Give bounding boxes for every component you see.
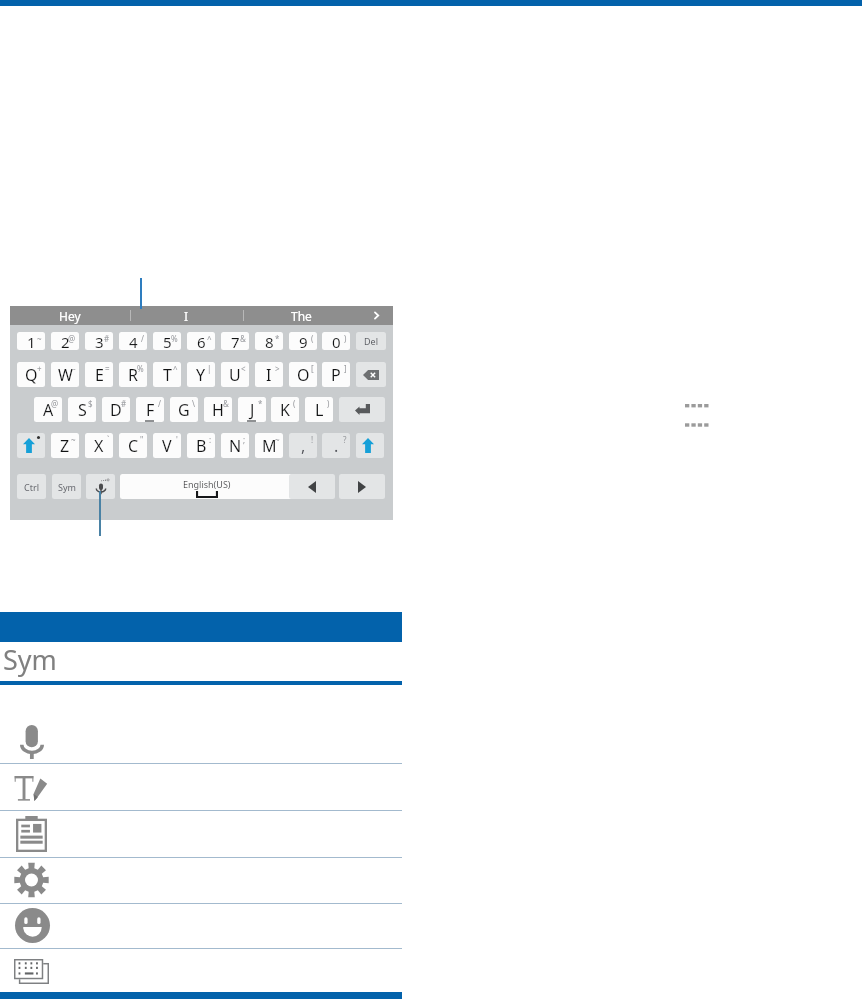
staticText: R xyxy=(128,364,138,386)
staticText: ! xyxy=(311,434,314,445)
button[interactable]: Q xyxy=(17,362,45,387)
staticText: - xyxy=(73,363,76,374)
button[interactable]: , xyxy=(289,433,317,458)
button[interactable]: Shift xyxy=(356,433,384,458)
staticText: % xyxy=(137,363,144,374)
staticText: @ xyxy=(51,398,59,409)
button[interactable]: I xyxy=(255,362,283,387)
button[interactable]: M xyxy=(255,433,283,458)
button[interactable]: R xyxy=(119,362,147,387)
staticText: J xyxy=(250,399,255,421)
staticText: ) xyxy=(344,333,347,344)
button[interactable]: E xyxy=(85,362,113,387)
staticText: V xyxy=(162,435,172,457)
button[interactable]: B xyxy=(187,433,215,458)
button[interactable]: The xyxy=(243,306,360,325)
button[interactable]: Y xyxy=(187,362,215,387)
staticText: & xyxy=(223,398,229,409)
button[interactable]: English(US) xyxy=(120,474,293,499)
button[interactable]: Shift xyxy=(17,433,45,458)
staticText: ` xyxy=(107,434,110,445)
staticText: Hey xyxy=(59,308,81,324)
button[interactable]: 1 xyxy=(17,332,45,350)
staticText: 7 xyxy=(231,332,240,350)
button[interactable]: T xyxy=(153,362,181,387)
button[interactable]: W xyxy=(51,362,79,387)
button[interactable]: A xyxy=(34,397,62,422)
staticText: [ xyxy=(311,363,314,374)
staticText: 9 xyxy=(299,332,308,350)
staticText: " xyxy=(140,434,144,445)
staticText: The xyxy=(291,308,312,324)
staticText: . xyxy=(334,435,339,457)
button[interactable]: H xyxy=(204,397,232,422)
staticText: ? xyxy=(343,434,347,445)
button[interactable]: N xyxy=(221,433,249,458)
button[interactable]: V xyxy=(153,433,181,458)
button[interactable]: I xyxy=(130,306,243,325)
button[interactable]: 3 xyxy=(85,332,113,350)
button[interactable]: F xyxy=(136,397,164,422)
button[interactable]: 5 xyxy=(153,332,181,350)
staticText: * xyxy=(275,333,280,344)
button[interactable]: 8 xyxy=(255,332,283,350)
button[interactable]: Move right xyxy=(339,474,385,499)
button[interactable]: 7 xyxy=(221,332,249,350)
staticText: L xyxy=(315,399,324,421)
button[interactable]: 4 xyxy=(119,332,147,350)
button[interactable]: X xyxy=(85,433,113,458)
button[interactable]: Del xyxy=(356,332,386,350)
button[interactable]: Backspace xyxy=(356,362,386,387)
staticText: W xyxy=(58,364,73,386)
button[interactable]: Keyboard settings xyxy=(0,857,402,903)
staticText: ( xyxy=(293,398,296,409)
staticText: F xyxy=(146,399,155,421)
staticText: Q xyxy=(25,364,38,386)
button[interactable]: D xyxy=(102,397,130,422)
staticText: + xyxy=(37,363,42,374)
staticText: \ xyxy=(192,398,195,409)
button[interactable]: 9 xyxy=(289,332,317,350)
button[interactable]: Ctrl xyxy=(17,474,46,499)
staticText: Sym xyxy=(58,481,76,493)
button[interactable]: 0 xyxy=(322,332,350,350)
button[interactable]: Enter xyxy=(339,397,385,422)
staticText: * xyxy=(258,398,263,409)
button[interactable]: O xyxy=(289,362,317,387)
staticText: Sym xyxy=(3,641,57,678)
button[interactable]: G xyxy=(170,397,198,422)
button[interactable]: L xyxy=(305,397,333,422)
button[interactable]: 6 xyxy=(187,332,215,350)
staticText: > xyxy=(275,363,280,374)
button[interactable]: Floating keyboard xyxy=(0,948,402,992)
staticText: C xyxy=(128,435,139,457)
staticText: / xyxy=(158,398,161,409)
staticText: ] xyxy=(344,363,347,374)
staticText: , xyxy=(301,435,306,457)
staticText: English(US) xyxy=(183,478,231,490)
button[interactable]: 2 xyxy=(51,332,79,350)
button[interactable]: Voice input xyxy=(86,474,115,499)
button[interactable]: C xyxy=(119,433,147,458)
button[interactable]: Emoticons xyxy=(0,903,402,948)
button[interactable]: J xyxy=(238,397,266,422)
button[interactable]: Voice input xyxy=(0,684,402,763)
staticText: H xyxy=(212,399,224,421)
button[interactable]: . xyxy=(322,433,350,458)
staticText: Ctrl xyxy=(24,481,39,493)
staticText: N xyxy=(229,435,242,457)
button[interactable]: Clipboard xyxy=(0,810,402,857)
staticText: # xyxy=(121,398,127,409)
staticText: 2 xyxy=(61,332,70,350)
button[interactable]: P xyxy=(322,362,350,387)
button[interactable]: Hey xyxy=(10,306,130,325)
button[interactable]: K xyxy=(271,397,299,422)
button[interactable]: U xyxy=(221,362,249,387)
button[interactable]: Move left xyxy=(289,474,335,499)
button[interactable]: More suggestions xyxy=(360,306,393,325)
button[interactable]: Handwriting xyxy=(0,763,402,810)
button[interactable]: Z xyxy=(51,433,79,458)
button[interactable]: S xyxy=(68,397,96,422)
staticText: Y xyxy=(196,364,206,386)
button[interactable]: Sym xyxy=(52,474,81,499)
